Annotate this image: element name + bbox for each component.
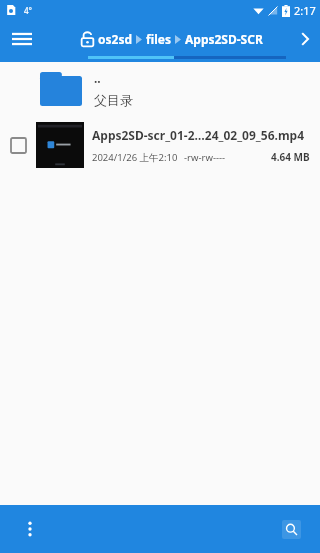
staticText: 2:17: [294, 3, 316, 18]
button[interactable]: ..: [0, 62, 320, 116]
button[interactable]: Select file: [0, 121, 36, 169]
staticText: 2024/1/26 上午2:10: [92, 151, 178, 164]
button[interactable]: Select file: [0, 116, 320, 174]
staticText: Apps2SD-scr_01-2…24_02_09_56.mp4: [92, 127, 305, 143]
staticText: ..: [94, 70, 101, 86]
button[interactable]: Search: [274, 512, 308, 546]
staticText: Apps2SD-SCR: [185, 31, 263, 47]
staticText: os2sd: [98, 31, 132, 47]
staticText: 4°: [24, 5, 32, 16]
button[interactable]: More options: [10, 509, 50, 549]
button[interactable]: os2sd: [98, 24, 263, 54]
staticText: 父目录: [94, 92, 133, 108]
button[interactable]: Storage access: [74, 26, 100, 52]
staticText: 4.64 MB: [271, 150, 310, 164]
staticText: files: [146, 31, 171, 47]
button[interactable]: Menu: [0, 18, 44, 60]
staticText: -rw-rw----: [184, 151, 226, 164]
button[interactable]: More path: [290, 24, 320, 54]
